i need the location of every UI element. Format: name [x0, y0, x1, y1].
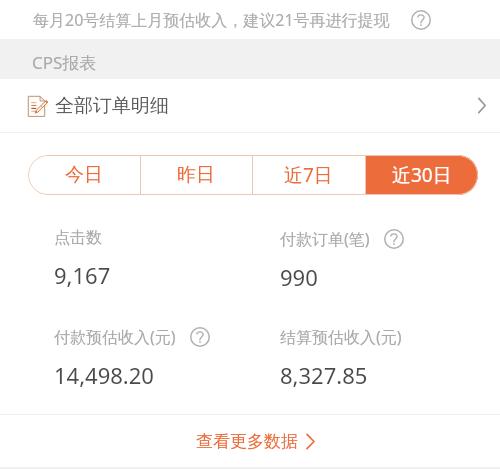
staticText: 点击数 — [54, 228, 102, 248]
staticText: 结算预估收入(元) — [280, 326, 402, 348]
staticText: 9,167 — [54, 260, 111, 290]
staticText: 近30日 — [392, 162, 452, 188]
staticText: 全部订单明细 — [55, 94, 169, 118]
staticText: 今日 — [65, 163, 103, 187]
button[interactable]: 结算说明 — [411, 10, 431, 30]
button[interactable]: 全部订单明细 — [0, 79, 500, 132]
staticText: CPS报表 — [32, 51, 97, 74]
staticText: 近7日 — [284, 162, 333, 188]
button[interactable]: 付款预估收入(元) 说明 — [190, 327, 210, 347]
button[interactable]: 今日 — [28, 155, 140, 195]
staticText: 查看更多数据 — [196, 431, 298, 452]
staticText: 8,327.85 — [280, 360, 368, 390]
button[interactable]: 查看更多数据 — [0, 415, 500, 467]
staticText: 付款预估收入(元) — [54, 326, 176, 348]
button[interactable]: 近30日 — [365, 155, 478, 195]
button[interactable]: 付款订单(笔) 说明 — [384, 229, 404, 249]
staticText: 昨日 — [177, 163, 215, 187]
staticText: 990 — [280, 262, 318, 292]
button[interactable]: 近7日 — [252, 155, 365, 195]
button[interactable]: 昨日 — [140, 155, 252, 195]
staticText: 付款订单(笔) — [280, 228, 370, 250]
staticText: 14,498.20 — [54, 360, 154, 390]
staticText: 每月20号结算上月预估收入，建议21号再进行提现 — [33, 9, 390, 31]
